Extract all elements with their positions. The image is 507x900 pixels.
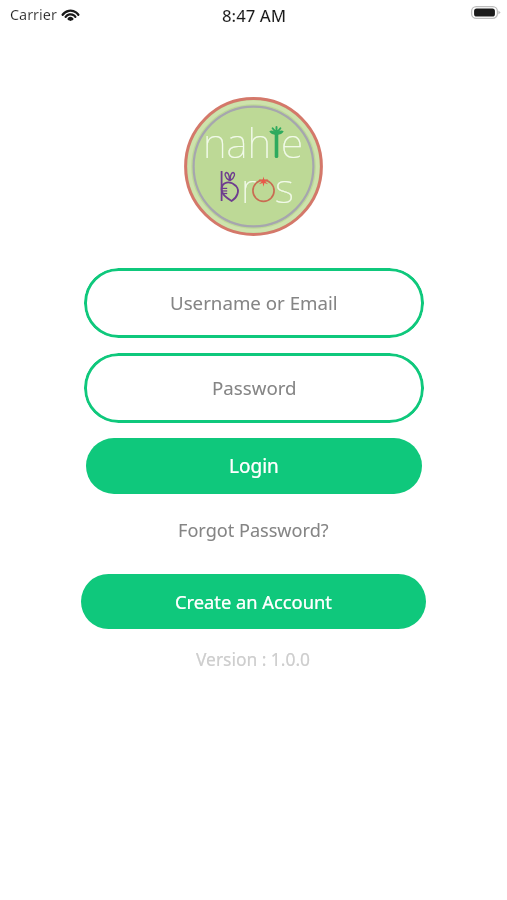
button[interactable]: Forgot Password? — [170, 514, 337, 547]
button[interactable]: Login — [86, 438, 422, 494]
staticText: r — [241, 159, 257, 215]
staticText: 8:47 AM — [222, 4, 287, 27]
staticText: nah — [203, 114, 271, 170]
other: nahie bros logo — [184, 97, 323, 236]
staticText: Login — [229, 453, 279, 479]
staticText: Password — [212, 375, 297, 400]
staticText: Create an Account — [175, 589, 332, 614]
staticText: Carrier — [10, 5, 57, 25]
staticText: s — [275, 159, 294, 215]
staticText: Forgot Password? — [178, 518, 329, 543]
staticText: Username or Email — [170, 290, 338, 315]
button[interactable]: Create an Account — [81, 574, 426, 629]
staticText: Version : 1.0.0 — [196, 647, 311, 671]
button[interactable]: Username or Email — [84, 268, 424, 338]
staticText: e — [281, 114, 304, 170]
button[interactable]: Password — [84, 353, 424, 423]
